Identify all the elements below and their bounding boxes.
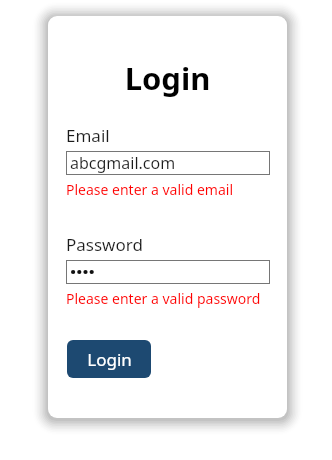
staticText: Please enter a valid email (66, 180, 233, 199)
staticText: Login (87, 348, 132, 371)
button[interactable]: Login (67, 340, 151, 378)
staticText: Password (66, 233, 143, 256)
button[interactable]: abcgmail.com (66, 151, 270, 175)
staticText: Please enter a valid password (66, 289, 261, 308)
staticText: Email (66, 124, 110, 147)
button[interactable] (66, 260, 270, 284)
staticText: Login (48, 57, 287, 99)
staticText: abcgmail.com (70, 152, 176, 174)
